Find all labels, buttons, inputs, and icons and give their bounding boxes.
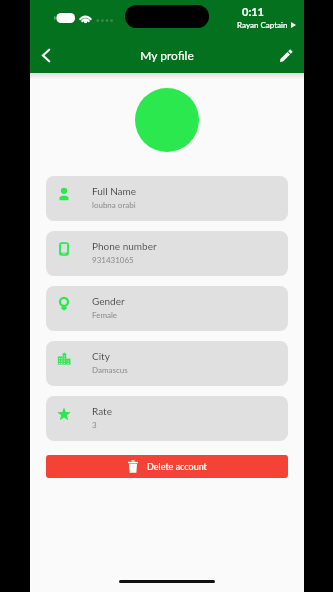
staticText: 0:11	[242, 5, 264, 18]
staticText: Damascus	[92, 365, 128, 375]
button[interactable]: Profile photo	[135, 88, 199, 152]
staticText: City	[92, 350, 110, 362]
staticText: Phone number	[92, 240, 157, 252]
button[interactable]: Full Name	[46, 176, 288, 221]
staticText: My profile	[140, 48, 194, 62]
button[interactable]: Back	[33, 42, 59, 68]
staticText: Gender	[92, 295, 125, 307]
button[interactable]: Gender	[46, 286, 288, 331]
staticText: 931431065	[92, 255, 134, 265]
staticText: 3	[92, 420, 97, 430]
staticText: Full Name	[92, 185, 137, 197]
staticText: Rate	[92, 405, 112, 417]
staticText: Female	[92, 310, 118, 320]
button[interactable]: Rate	[46, 396, 288, 441]
button[interactable]: Phone number	[46, 231, 288, 276]
button[interactable]: Delete account	[46, 455, 288, 478]
staticText: Delete account	[147, 461, 207, 472]
staticText: Rayan Captain	[237, 20, 288, 30]
button[interactable]: City	[46, 341, 288, 386]
button[interactable]: Edit profile	[273, 42, 299, 68]
staticText: loubna orabi	[92, 200, 136, 210]
